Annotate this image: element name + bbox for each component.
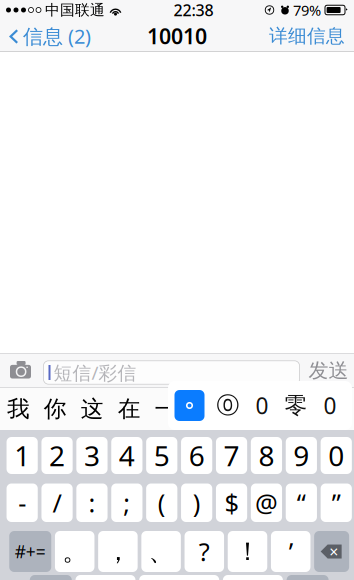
staticText: 0 bbox=[328, 437, 344, 474]
staticText: 6 bbox=[189, 437, 205, 474]
staticText: 0 bbox=[255, 390, 268, 420]
staticText: ’ bbox=[289, 535, 293, 568]
button[interactable]: “ bbox=[286, 483, 317, 522]
button[interactable]: 一 bbox=[148, 388, 184, 430]
button[interactable]: : bbox=[76, 483, 108, 522]
staticText: @ bbox=[255, 486, 278, 519]
button[interactable]: $ bbox=[216, 483, 247, 522]
staticText: “ bbox=[297, 486, 306, 519]
staticText: $ bbox=[225, 486, 239, 519]
staticText: 你 bbox=[44, 395, 67, 423]
staticText: × bbox=[329, 541, 338, 562]
button[interactable]: ” bbox=[321, 483, 352, 522]
staticText: 2 bbox=[49, 437, 65, 474]
button[interactable]: 了 bbox=[258, 388, 295, 430]
button[interactable] bbox=[75, 575, 135, 580]
staticText: ; bbox=[123, 486, 130, 519]
button[interactable]: #+= bbox=[9, 531, 51, 572]
button[interactable]: 4 bbox=[111, 437, 142, 474]
staticText: ” bbox=[332, 486, 341, 519]
staticText: 短信/彩信 bbox=[53, 360, 136, 385]
button[interactable]: 9 bbox=[286, 437, 317, 474]
button[interactable] bbox=[139, 575, 219, 580]
button[interactable]: ( bbox=[146, 483, 177, 522]
staticText: 79% bbox=[293, 0, 321, 20]
button[interactable]: 2 bbox=[41, 437, 73, 474]
staticText: 发送 bbox=[308, 358, 348, 383]
button[interactable]: 、 bbox=[141, 531, 181, 572]
button[interactable]: 8 bbox=[251, 437, 282, 474]
staticText: 10010 bbox=[147, 22, 207, 50]
staticText: 5 bbox=[154, 437, 170, 474]
staticText: ， bbox=[105, 536, 130, 567]
staticText: ) bbox=[193, 486, 201, 519]
staticText: - bbox=[18, 486, 26, 519]
staticText: 0 bbox=[323, 390, 336, 420]
staticText: 详细信息 bbox=[269, 24, 345, 47]
button[interactable]: ’ bbox=[271, 531, 310, 572]
button[interactable]: 6 bbox=[181, 437, 212, 474]
staticText: 9 bbox=[293, 437, 309, 474]
button[interactable]: 3 bbox=[76, 437, 108, 474]
staticText: #+= bbox=[15, 540, 46, 563]
button[interactable]: ， bbox=[98, 531, 138, 572]
button[interactable]: 信息 (2) bbox=[0, 21, 91, 51]
button[interactable]: - bbox=[7, 483, 38, 522]
staticText: / bbox=[53, 486, 62, 519]
staticText: 零 bbox=[284, 392, 307, 419]
staticText: 、 bbox=[149, 536, 174, 567]
staticText: 这 bbox=[81, 395, 104, 423]
button[interactable]: Camera bbox=[0, 353, 43, 388]
button[interactable]: ? bbox=[185, 531, 224, 572]
button[interactable]: 零 bbox=[279, 381, 313, 430]
button[interactable]: 这 bbox=[74, 388, 111, 430]
staticText: ? bbox=[199, 535, 210, 568]
button[interactable]: ) bbox=[181, 483, 212, 522]
button[interactable] bbox=[223, 575, 283, 580]
button[interactable]: Delete bbox=[314, 531, 349, 572]
staticText: ⓪ bbox=[216, 392, 239, 419]
staticText: 我 bbox=[7, 395, 30, 423]
button[interactable]: / bbox=[41, 483, 73, 522]
button[interactable] bbox=[30, 575, 72, 580]
button[interactable]: Degree sign bbox=[168, 381, 211, 430]
staticText: 有 bbox=[302, 395, 325, 423]
button[interactable]: @ bbox=[251, 483, 282, 522]
staticText: 7 bbox=[224, 437, 240, 474]
button[interactable]: 有 bbox=[295, 388, 332, 430]
button[interactable]: 详细信息 bbox=[269, 21, 354, 51]
button[interactable]: 0 bbox=[245, 381, 279, 430]
button[interactable]: ⓪ bbox=[211, 381, 245, 430]
staticText: 1 bbox=[14, 437, 30, 474]
staticText: ！ bbox=[235, 536, 260, 567]
button[interactable]: 你 bbox=[37, 388, 74, 430]
button[interactable]: 在 bbox=[111, 388, 148, 430]
button[interactable]: 不 bbox=[184, 388, 221, 430]
button[interactable]: 0 bbox=[313, 381, 347, 430]
staticText: 信息 (2) bbox=[23, 23, 91, 49]
staticText: : bbox=[88, 486, 95, 519]
button[interactable]: 发送 bbox=[299, 353, 354, 387]
staticText: 。 bbox=[62, 536, 87, 567]
button[interactable]: 1 bbox=[7, 437, 38, 474]
button[interactable]: ; bbox=[111, 483, 142, 522]
button[interactable]: 。 bbox=[55, 531, 94, 572]
staticText: ( bbox=[158, 486, 166, 519]
staticText: 22:38 bbox=[173, 0, 213, 21]
button[interactable]: 7 bbox=[216, 437, 247, 474]
button[interactable]: ！ bbox=[228, 531, 267, 572]
button[interactable]: 我 bbox=[0, 388, 37, 430]
staticText: 是 bbox=[228, 395, 251, 423]
button[interactable]: 0 bbox=[321, 437, 352, 474]
staticText: 中国联通 bbox=[45, 1, 105, 19]
staticText: 在 bbox=[118, 395, 141, 423]
staticText: 3 bbox=[84, 437, 100, 474]
button[interactable] bbox=[287, 575, 329, 580]
staticText: 8 bbox=[258, 437, 274, 474]
button[interactable]: 5 bbox=[146, 437, 177, 474]
staticText: 一 bbox=[154, 395, 177, 423]
staticText: 了 bbox=[265, 395, 288, 423]
staticText: 不 bbox=[191, 395, 214, 423]
staticText: 4 bbox=[119, 437, 135, 474]
button[interactable]: 是 bbox=[221, 388, 258, 430]
